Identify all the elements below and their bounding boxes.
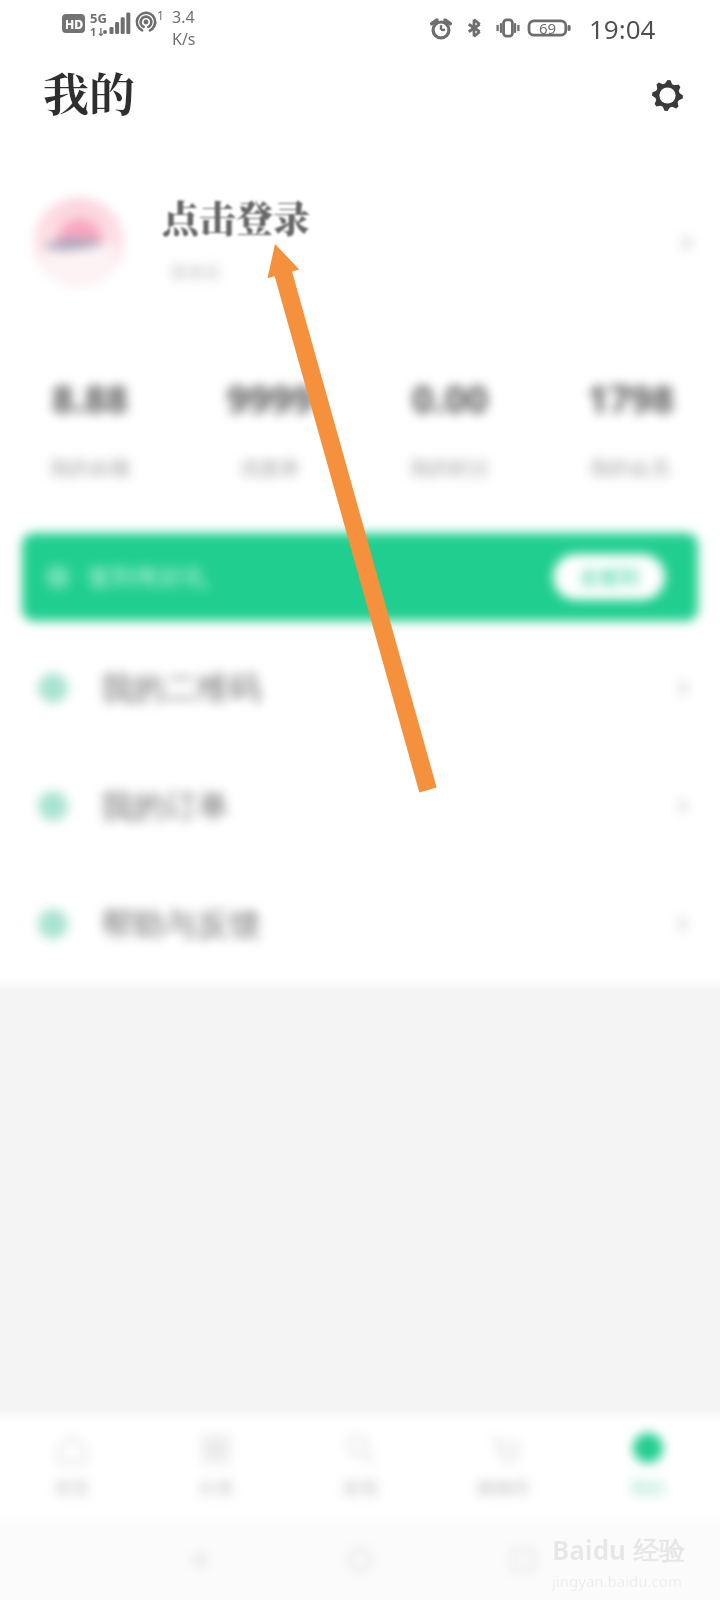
staticText: 我的 bbox=[43, 58, 135, 124]
staticText: 我的会员 bbox=[590, 456, 670, 481]
staticText: jingyan.baidu.com bbox=[552, 1571, 682, 1591]
button[interactable]: 1798 bbox=[540, 334, 720, 484]
staticText: 69 bbox=[539, 18, 557, 38]
staticText: 我的二维码 bbox=[101, 668, 261, 708]
staticText: 我的 bbox=[630, 1477, 666, 1500]
staticText: 3.4 bbox=[172, 6, 195, 28]
button[interactable]: 我的订单 bbox=[0, 747, 720, 865]
button[interactable]: 首页 bbox=[0, 1433, 144, 1520]
button[interactable]: 点击登录 bbox=[162, 190, 310, 243]
button[interactable]: 购物车 bbox=[432, 1433, 576, 1520]
staticText: 我的积分 bbox=[410, 456, 490, 481]
button[interactable]: Back bbox=[180, 1543, 214, 1577]
button[interactable]: 帮助与反馈 bbox=[0, 865, 720, 983]
staticText: 1 bbox=[157, 7, 164, 23]
staticText: 1↓ bbox=[90, 24, 106, 39]
staticText: 登录后 bbox=[170, 262, 221, 283]
staticText: 19:04 bbox=[589, 11, 656, 46]
staticText: K/s bbox=[172, 28, 196, 50]
staticText: 去签到 bbox=[579, 565, 639, 590]
staticText: 发现 bbox=[342, 1477, 378, 1500]
staticText: 0.00 bbox=[412, 372, 488, 424]
button[interactable]: 登录后 bbox=[0, 152, 720, 334]
button[interactable]: 我的二维码 bbox=[0, 629, 720, 747]
button[interactable]: 签到有好礼 bbox=[22, 533, 698, 621]
button[interactable]: 分类 bbox=[144, 1433, 288, 1520]
staticText: 购物车 bbox=[477, 1477, 531, 1500]
staticText: 优惠券 bbox=[240, 456, 300, 481]
button[interactable]: 0.00 bbox=[360, 334, 540, 484]
staticText: 9999 bbox=[227, 372, 314, 424]
staticText: Baidu 经验 bbox=[552, 1532, 685, 1568]
staticText: 我的订单 bbox=[101, 786, 229, 826]
staticText: 5G bbox=[90, 9, 107, 27]
button[interactable]: 我的 bbox=[576, 1433, 720, 1520]
staticText: 帮助与反馈 bbox=[101, 904, 261, 944]
button[interactable]: Settings bbox=[640, 68, 694, 122]
staticText: HD bbox=[65, 16, 83, 32]
button[interactable]: 发现 bbox=[288, 1433, 432, 1520]
button[interactable]: 8.88 bbox=[0, 334, 180, 484]
staticText: 1798 bbox=[587, 372, 674, 424]
staticText: 签到有好礼 bbox=[88, 562, 208, 592]
staticText: 我的余额 bbox=[50, 456, 130, 481]
button[interactable]: 去签到 bbox=[553, 554, 665, 600]
staticText: 8.88 bbox=[52, 372, 128, 424]
staticText: 首页 bbox=[54, 1477, 90, 1500]
button[interactable]: 9999 bbox=[180, 334, 360, 484]
staticText: 分类 bbox=[198, 1477, 234, 1500]
